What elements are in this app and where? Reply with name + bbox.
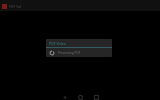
button[interactable]: Recents [90, 91, 102, 100]
staticText: PDF Video [49, 41, 66, 46]
button[interactable]: PDF Vid [0, 0, 160, 13]
staticText: PDF Vid [9, 4, 22, 9]
staticText: Processing PDF [58, 51, 81, 55]
button[interactable]: Home [74, 91, 86, 100]
button[interactable]: Processing PDF [46, 48, 112, 57]
button[interactable]: Back [58, 91, 70, 100]
